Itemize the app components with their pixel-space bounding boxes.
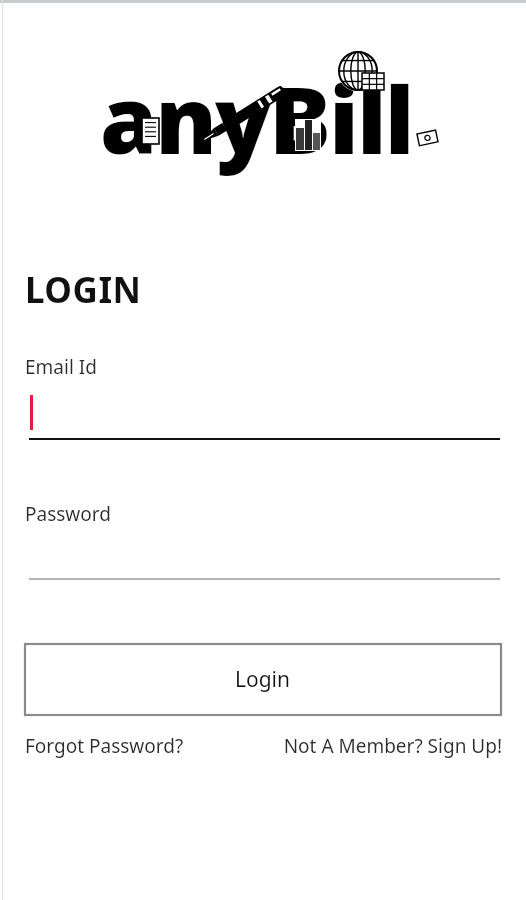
button[interactable] <box>25 388 501 440</box>
staticText: anyBill <box>100 56 413 181</box>
staticText: LOGIN <box>25 266 142 314</box>
button[interactable]: Forgot Password? <box>25 731 215 761</box>
staticText: Password <box>25 501 111 527</box>
staticText: Login <box>235 665 291 694</box>
staticText: Forgot Password? <box>25 733 184 759</box>
button[interactable]: Not A Member? Sign Up! <box>254 731 502 761</box>
button[interactable] <box>25 532 501 580</box>
staticText: Email Id <box>25 354 97 380</box>
button[interactable]: Login <box>25 644 501 715</box>
staticText: Not A Member? Sign Up! <box>283 733 502 759</box>
